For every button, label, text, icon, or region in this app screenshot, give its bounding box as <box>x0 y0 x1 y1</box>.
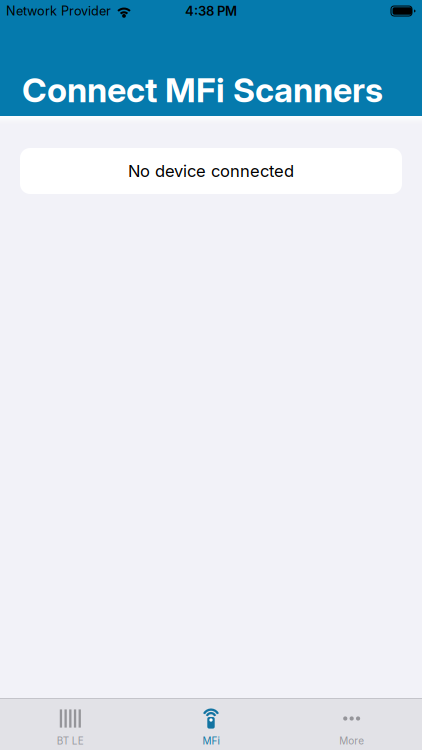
staticText: Network Provider <box>6 3 111 18</box>
button[interactable]: BT LE <box>0 708 141 747</box>
button[interactable]: MFi <box>141 708 281 747</box>
staticText: MFi <box>202 735 219 747</box>
staticText: BT LE <box>57 735 84 747</box>
button[interactable]: No device connected <box>20 148 402 194</box>
button[interactable]: More <box>281 708 422 747</box>
staticText: More <box>339 735 364 747</box>
staticText: 4:38 PM <box>185 3 237 19</box>
staticText: No device connected <box>128 161 294 181</box>
staticText: Connect MFi Scanners <box>22 70 383 110</box>
